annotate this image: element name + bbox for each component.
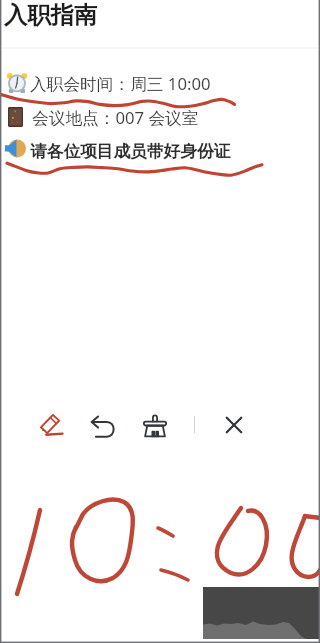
button[interactable]: Clear all	[135, 406, 175, 446]
button[interactable]: Pen	[31, 403, 71, 443]
staticText: 会议地点：007 会议室	[32, 106, 199, 129]
button[interactable]: Undo	[83, 406, 123, 446]
staticText: 请各位项目成员带好身份证	[30, 141, 231, 162]
staticText: 入职指南	[4, 1, 98, 30]
button[interactable]: Close	[214, 405, 254, 445]
staticText: 入职会时间：周三 10:00	[30, 72, 211, 95]
